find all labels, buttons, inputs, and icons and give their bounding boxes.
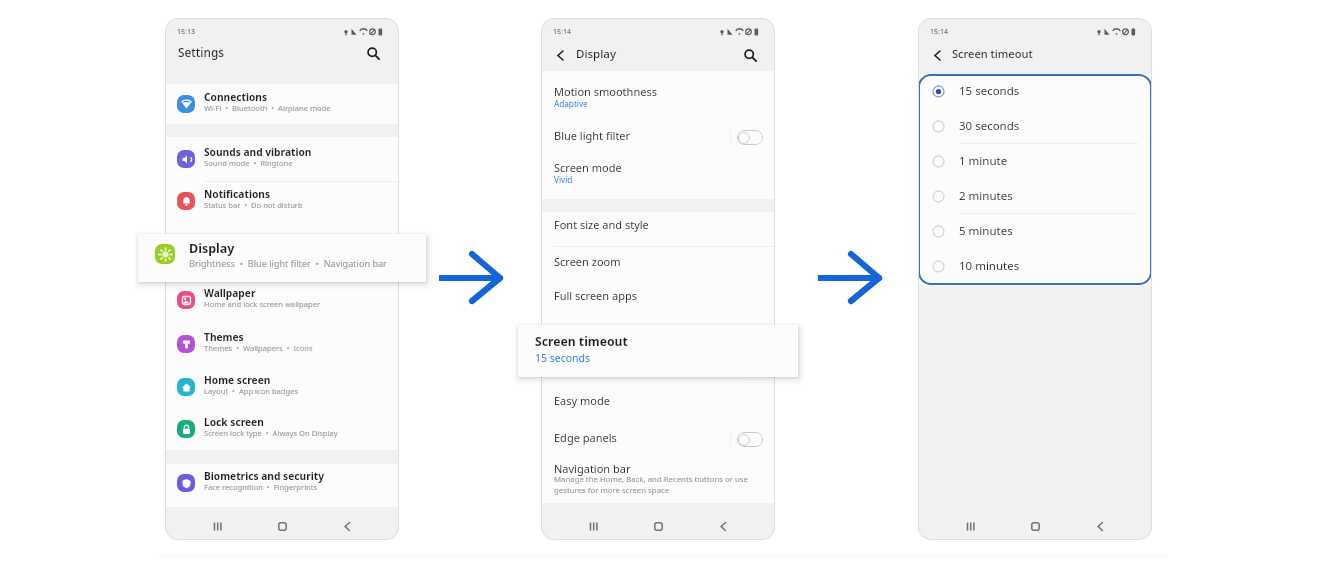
button[interactable]: Lock screen <box>165 412 399 454</box>
button[interactable]: 15 seconds <box>918 74 1152 109</box>
staticText: 15:14 <box>930 27 948 37</box>
staticText: Blue light filter <box>554 128 631 143</box>
staticText: Brightness • Blue light filter • Navigat… <box>189 257 387 269</box>
button[interactable]: Recents <box>957 513 983 539</box>
button[interactable]: Screen mode <box>541 158 775 192</box>
staticText: 1 minute <box>959 153 1008 169</box>
button[interactable]: Notifications <box>165 184 399 226</box>
button[interactable]: Sounds and vibration <box>165 142 399 184</box>
staticText: Lock screen <box>204 415 264 429</box>
staticText: 30 seconds <box>959 118 1020 134</box>
button[interactable]: Screen zoom <box>541 252 775 282</box>
button[interactable]: Screen timeout <box>518 325 798 377</box>
button[interactable]: 5 minutes <box>918 214 1152 249</box>
staticText: Wallpaper <box>204 286 256 300</box>
button[interactable]: 10 minutes <box>918 249 1152 284</box>
staticText: Biometrics and security <box>204 469 324 483</box>
staticText: Notifications <box>204 187 271 201</box>
staticText: Home and lock screen wallpaper <box>204 299 321 309</box>
button[interactable]: Back <box>926 44 948 66</box>
staticText: 15:13 <box>177 27 195 37</box>
staticText: Vivid <box>554 174 573 185</box>
staticText: Status bar • Do not disturb <box>204 200 303 210</box>
button[interactable]: Themes <box>165 327 399 369</box>
staticText: 15 seconds <box>959 83 1020 99</box>
button[interactable]: Back <box>710 513 736 539</box>
button[interactable]: Search <box>739 44 761 66</box>
staticText: Screen timeout <box>535 333 628 350</box>
button[interactable]: Search <box>362 42 384 64</box>
button[interactable]: Edge panels <box>541 428 775 458</box>
button[interactable]: Recents <box>204 513 230 539</box>
button[interactable]: Blue light filter <box>541 126 775 156</box>
button[interactable]: Blue light filter toggle <box>737 130 763 145</box>
staticText: Easy mode <box>554 393 610 408</box>
staticText: Screen timeout <box>952 46 1033 61</box>
staticText: 2 minutes <box>959 188 1013 204</box>
staticText: Screen zoom <box>554 254 621 269</box>
staticText: Face recognition • Fingerprints <box>204 482 318 492</box>
button[interactable]: Back <box>1087 513 1113 539</box>
button[interactable]: Display <box>138 234 426 282</box>
staticText: Sounds and vibration <box>204 145 312 159</box>
button[interactable]: Full screen apps <box>541 286 775 316</box>
staticText: Themes <box>204 330 244 344</box>
button[interactable]: Recents <box>580 513 606 539</box>
button[interactable]: Home <box>1022 513 1048 539</box>
button[interactable]: Wallpaper <box>165 283 399 325</box>
staticText: Home screen <box>204 373 271 387</box>
staticText: Settings <box>178 44 224 60</box>
staticText: Edge panels <box>554 430 617 445</box>
staticText: Themes • Wallpapers • Icons <box>204 343 313 353</box>
button[interactable]: Home <box>645 513 671 539</box>
staticText: Screen lock type • Always On Display <box>204 428 338 438</box>
button[interactable]: 2 minutes <box>918 179 1152 214</box>
staticText: Adaptive <box>554 98 588 109</box>
button[interactable]: Motion smoothness <box>541 82 775 116</box>
staticText: Layout • App icon badges <box>204 386 299 396</box>
button[interactable]: Home <box>269 513 295 539</box>
staticText: Wi-Fi • Bluetooth • Airplane mode <box>204 103 331 113</box>
staticText: 10 minutes <box>959 258 1020 274</box>
staticText: 15 seconds <box>535 351 591 365</box>
button[interactable]: Biometrics and security <box>165 466 399 508</box>
button[interactable]: 30 seconds <box>918 109 1152 144</box>
button[interactable]: Font size and style <box>541 215 775 245</box>
staticText: 15:14 <box>553 27 571 37</box>
staticText: Motion smoothness <box>554 84 657 99</box>
staticText: Display <box>576 46 616 62</box>
staticText: Manage the Home, Back, and Recents butto… <box>554 474 748 496</box>
staticText: Font size and style <box>554 217 649 232</box>
button[interactable]: Back <box>549 44 571 66</box>
button[interactable]: 1 minute <box>918 144 1152 179</box>
staticText: Full screen apps <box>554 288 637 303</box>
staticText: Sound mode • Ringtone <box>204 158 293 168</box>
button[interactable]: Edge panels toggle <box>737 432 763 447</box>
staticText: Navigation bar <box>554 461 631 476</box>
button[interactable]: Home screen <box>165 370 399 412</box>
staticText: 5 minutes <box>959 223 1013 239</box>
button[interactable]: Connections <box>165 87 399 129</box>
button[interactable]: Easy mode <box>541 391 775 421</box>
staticText: Connections <box>204 90 268 104</box>
button[interactable]: Back <box>334 513 360 539</box>
staticText: Display <box>189 240 235 257</box>
staticText: Screen mode <box>554 160 622 175</box>
